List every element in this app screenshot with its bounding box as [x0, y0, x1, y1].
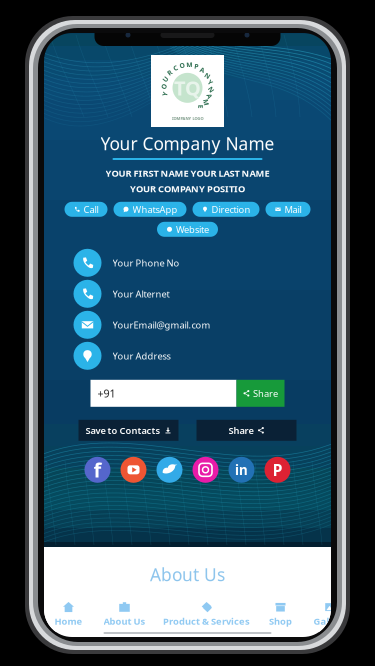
button[interactable]: Your Alternet: [73, 280, 301, 308]
staticText: in: [235, 461, 248, 479]
staticText: Call: [83, 203, 98, 215]
staticText: Mail: [284, 203, 301, 215]
button[interactable]: Share: [236, 380, 284, 407]
button[interactable]: Direction: [192, 202, 259, 217]
button[interactable]: Your Phone No: [73, 249, 301, 277]
button[interactable]: LinkedIn: [228, 457, 254, 483]
staticText: Y: [163, 90, 167, 98]
button[interactable]: Your Address: [73, 342, 301, 370]
staticText: COMPANY LOGO: [171, 116, 203, 121]
button[interactable]: Share: [196, 420, 296, 441]
staticText: f: [93, 456, 101, 483]
staticText: Y: [208, 78, 212, 87]
staticText: Direction: [211, 203, 250, 215]
button[interactable]: YouTube: [120, 457, 146, 483]
staticText: M: [186, 60, 192, 69]
button[interactable]: Facebook: [84, 457, 110, 483]
button[interactable]: WhatsApp: [113, 202, 186, 217]
staticText: Your Address: [112, 350, 170, 362]
staticText: C: [173, 64, 177, 72]
staticText: A: [207, 92, 212, 101]
staticText: O: [180, 61, 185, 70]
staticText: Gallery: [313, 615, 347, 627]
button[interactable]: Product & Services: [155, 594, 257, 632]
staticText: Share: [253, 387, 278, 399]
button[interactable]: Home: [43, 594, 93, 632]
button[interactable]: About Us: [93, 594, 155, 632]
staticText: +91: [97, 386, 115, 400]
staticText: M: [203, 98, 209, 107]
staticText: About Us: [150, 563, 225, 586]
staticText: O: [161, 82, 166, 91]
staticText: TQ: [174, 75, 201, 101]
button[interactable]: Save to Contacts: [78, 420, 178, 441]
staticText: A: [200, 66, 205, 74]
staticText: U: [163, 75, 168, 84]
staticText: N: [209, 85, 214, 94]
staticText: E: [199, 102, 203, 111]
staticText: Product & Services: [163, 615, 250, 627]
staticText: P: [272, 459, 282, 480]
staticText: N: [205, 71, 210, 80]
staticText: About Us: [103, 615, 145, 627]
staticText: Share: [228, 424, 253, 436]
button[interactable]: Instagram: [192, 457, 218, 483]
staticText: Shop: [269, 615, 292, 627]
staticText: YOUR COMPANY POSITIO: [130, 182, 245, 195]
staticText: YOUR FIRST NAME YOUR LAST NAME: [105, 167, 269, 179]
staticText: Your Phone No: [112, 257, 179, 269]
button[interactable]: Gallery: [303, 594, 357, 632]
staticText: YourEmail@gmail.com: [112, 319, 210, 331]
button[interactable]: YourEmail@gmail.com: [73, 311, 301, 339]
staticText: WhatsApp: [132, 203, 177, 215]
staticText: P: [194, 62, 198, 71]
button[interactable]: Pinterest: [264, 457, 290, 483]
button[interactable]: Shop: [257, 594, 303, 632]
staticText: Your Company Name: [100, 132, 274, 155]
staticText: Home: [54, 615, 82, 627]
button[interactable]: Call: [64, 202, 107, 217]
staticText: Save to Contacts: [85, 424, 160, 436]
button[interactable]: Website: [157, 222, 218, 237]
button[interactable]: Twitter: [156, 457, 182, 483]
staticText: Your Alternet: [112, 288, 169, 300]
staticText: Website: [176, 223, 209, 235]
button[interactable]: Mail: [265, 202, 310, 217]
staticText: R: [167, 68, 171, 77]
